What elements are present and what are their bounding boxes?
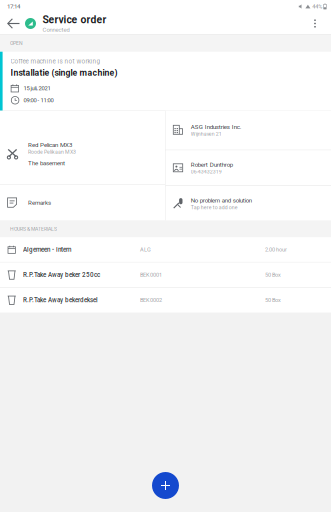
staticText: R.P.Take Away beker 250cc: [23, 271, 100, 278]
button[interactable]: More options: [302, 10, 328, 36]
staticText: 44%: [312, 3, 322, 10]
button[interactable]: Back: [3, 13, 24, 34]
staticText: Robert Dunthrop: [191, 161, 233, 168]
staticText: Red Pelican MX3: [28, 141, 72, 148]
staticText: 06-43432319: [191, 169, 222, 175]
button[interactable]: ASG Industries Inc.: [166, 111, 331, 150]
staticText: 09:00 - 11:00: [24, 97, 54, 104]
button[interactable]: Add item: [144, 464, 186, 506]
button[interactable]: Remarks: [0, 185, 165, 221]
staticText: Installatie (single machine): [11, 68, 118, 78]
button[interactable]: R.P.Take Away beker 250cc: [0, 263, 331, 287]
staticText: BEK0001: [140, 272, 162, 278]
staticText: 15 juli, 2021: [24, 85, 51, 92]
button[interactable]: Coffee machine is not working: [0, 52, 331, 111]
staticText: BEK0002: [140, 297, 162, 303]
staticText: ASG Industries Inc.: [191, 123, 242, 130]
button[interactable]: Algemeen - intern: [0, 237, 331, 262]
staticText: Service order: [42, 14, 106, 26]
staticText: Remarks: [28, 199, 51, 206]
staticText: Coffee machine is not working: [11, 58, 101, 65]
button[interactable]: Red Pelican MX3: [0, 111, 165, 184]
staticText: The basement: [28, 160, 65, 167]
staticText: No problem and solution: [191, 197, 252, 204]
staticText: Tap here to add one: [191, 204, 238, 210]
staticText: Wijnhaven 21: [191, 131, 222, 137]
button[interactable]: No problem and solution: [166, 186, 331, 221]
staticText: ALG: [140, 246, 151, 253]
staticText: Roode Pelikaan MX3: [28, 149, 76, 155]
staticText: 50 Box: [265, 297, 281, 303]
staticText: 2.00 hour: [265, 246, 287, 253]
staticText: HOURS & MATERIALS: [10, 226, 57, 232]
staticText: OPEN: [10, 40, 23, 46]
staticText: Algemeen - intern: [23, 246, 71, 253]
staticText: 17:14: [7, 3, 20, 10]
staticText: 50 Box: [265, 272, 281, 278]
staticText: Connected: [42, 26, 69, 33]
button[interactable]: R.P.Take Away bekerdeksel: [0, 288, 331, 312]
staticText: R.P.Take Away bekerdeksel: [23, 296, 98, 304]
button[interactable]: Robert Dunthrop: [166, 150, 331, 185]
